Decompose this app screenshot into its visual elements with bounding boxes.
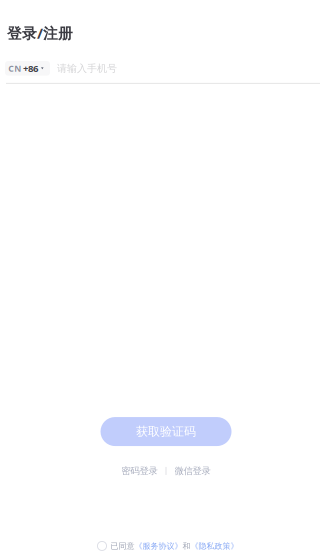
button[interactable]: Agree to the terms bbox=[97, 541, 134, 551]
staticText: 已同意 bbox=[106, 541, 134, 551]
staticText: 《隐私政策》 bbox=[190, 541, 238, 551]
button[interactable]: 《隐私政策》 bbox=[190, 541, 238, 551]
staticText: 登录/注册 bbox=[7, 23, 73, 43]
staticText: 《服务协议》 bbox=[134, 541, 182, 551]
button[interactable]: Country code, China, +86 bbox=[5, 61, 50, 76]
button[interactable]: 密码登录 bbox=[113, 462, 165, 480]
staticText: +86 bbox=[23, 62, 38, 75]
staticText: 请输入手机号 bbox=[57, 62, 117, 75]
staticText: 微信登录 bbox=[174, 465, 210, 477]
staticText: 和 bbox=[182, 541, 190, 551]
staticText: 密码登录 bbox=[121, 465, 157, 477]
button[interactable]: 获取验证码 bbox=[100, 417, 231, 446]
staticText: CN bbox=[8, 62, 21, 74]
staticText: 获取验证码 bbox=[136, 424, 196, 439]
button[interactable]: 微信登录 bbox=[166, 462, 218, 480]
button[interactable]: 《服务协议》 bbox=[134, 541, 182, 551]
